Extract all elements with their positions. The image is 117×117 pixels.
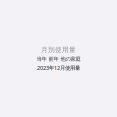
staticText: 当年 前年 他の家庭: [36, 56, 80, 62]
staticText: 2023年12月使用量: [37, 64, 80, 71]
staticText: 月別使用量: [41, 46, 76, 54]
